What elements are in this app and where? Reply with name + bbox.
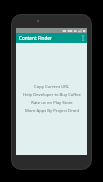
staticText: More Apps By Project Droid <box>25 108 79 114</box>
button[interactable]: Copy Current URL <box>16 83 87 91</box>
staticText: Rate us on Play Store <box>31 100 73 106</box>
staticText: Help Developer to Buy Coffee <box>23 92 81 98</box>
staticText: Content Finder <box>19 35 80 41</box>
button[interactable]: Help Developer to Buy Coffee <box>16 91 87 99</box>
staticText: Copy Current URL <box>34 84 69 90</box>
button[interactable]: More Apps By Project Droid <box>16 107 87 115</box>
button[interactable]: More options <box>80 33 86 43</box>
button[interactable]: Rate us on Play Store <box>16 99 87 107</box>
